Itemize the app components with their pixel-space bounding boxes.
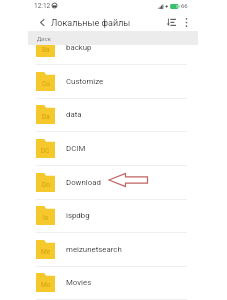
staticText: Do xyxy=(42,181,50,189)
button[interactable]: Do xyxy=(28,166,198,200)
button[interactable]: Sort xyxy=(163,13,179,32)
staticText: Da xyxy=(42,113,50,121)
staticText: Ba xyxy=(42,46,50,54)
button[interactable]: More options xyxy=(180,13,193,32)
button[interactable]: Back xyxy=(34,13,51,32)
staticText: ispdbg xyxy=(66,211,90,220)
staticText: Customize xyxy=(66,77,104,86)
staticText: Download xyxy=(66,178,101,187)
staticText: Cu xyxy=(42,80,50,88)
button[interactable]: Is xyxy=(28,199,198,233)
button[interactable]: DC xyxy=(28,132,198,166)
staticText: 66 xyxy=(181,2,188,9)
staticText: backup xyxy=(66,43,92,52)
button[interactable]: Диск xyxy=(37,36,51,43)
button[interactable]: Da xyxy=(28,98,198,132)
button[interactable]: Me xyxy=(28,233,198,267)
staticText: 12:12 xyxy=(34,2,51,10)
staticText: DCIM xyxy=(66,144,86,153)
button[interactable]: Cu xyxy=(28,65,198,99)
button[interactable]: Mo xyxy=(28,266,198,300)
button[interactable]: Ba xyxy=(28,31,198,65)
staticText: Локальные файлы xyxy=(51,18,131,29)
staticText: Me xyxy=(41,248,51,256)
staticText: Movies xyxy=(66,278,92,287)
staticText: Mo xyxy=(41,281,51,289)
staticText: meizunetsearch xyxy=(66,245,122,254)
staticText: DC xyxy=(41,147,50,155)
staticText: data xyxy=(66,110,82,119)
staticText: Is xyxy=(43,214,49,222)
